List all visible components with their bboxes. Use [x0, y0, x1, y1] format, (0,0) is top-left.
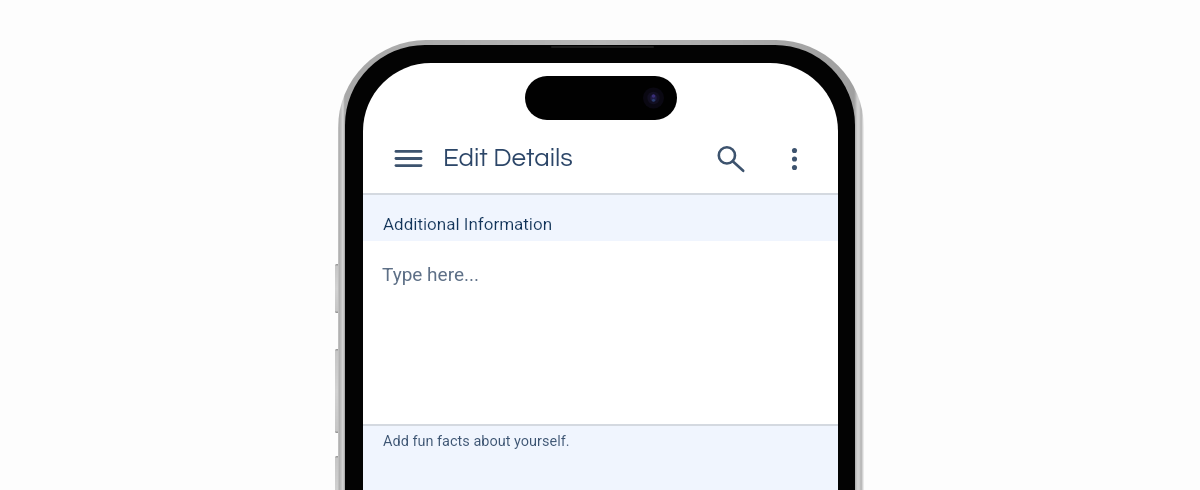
staticText: Additional Information — [383, 214, 553, 234]
button[interactable]: Additional Information — [363, 195, 838, 241]
button[interactable]: Type here... — [363, 241, 838, 424]
button[interactable]: Add fun facts about yourself. — [363, 426, 838, 490]
staticText: Add fun facts about yourself. — [383, 433, 570, 450]
button[interactable]: More options — [774, 138, 814, 179]
button[interactable]: Menu — [383, 138, 433, 179]
staticText: Type here... — [382, 263, 480, 285]
button[interactable]: Search — [708, 136, 752, 180]
staticText: Edit Details — [443, 145, 573, 172]
